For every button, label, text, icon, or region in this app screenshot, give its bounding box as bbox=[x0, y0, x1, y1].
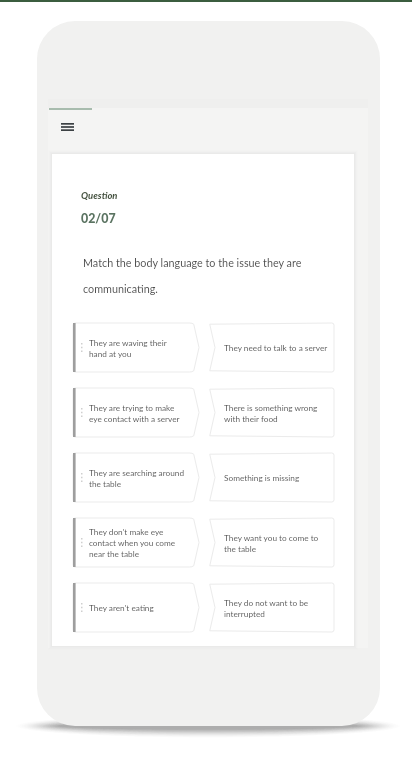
button[interactable]: They do not want to be interrupted bbox=[208, 583, 334, 632]
button[interactable]: They aren't eating bbox=[73, 583, 199, 632]
button[interactable]: They are trying to make eye contact with… bbox=[73, 388, 199, 437]
button[interactable]: They need to talk to a server bbox=[208, 323, 334, 372]
staticText: They are waving their hand at you bbox=[89, 338, 185, 358]
button[interactable]: Something is missing bbox=[208, 453, 334, 502]
button[interactable]: They are searching around the table bbox=[73, 453, 199, 502]
staticText: They are searching around the table bbox=[89, 468, 185, 488]
staticText: They want you to come to the table bbox=[224, 533, 328, 553]
button[interactable]: They are waving their hand at you bbox=[73, 323, 199, 372]
button[interactable]: They want you to come to the table bbox=[208, 518, 334, 567]
button[interactable]: They don't make eye contact when you com… bbox=[73, 518, 199, 567]
staticText: They do not want to be interrupted bbox=[224, 598, 328, 618]
button[interactable]: Open navigation menu bbox=[54, 116, 80, 138]
staticText: Question bbox=[81, 190, 118, 201]
staticText: There is something wrong with their food bbox=[224, 403, 328, 423]
button[interactable]: There is something wrong with their food bbox=[208, 388, 334, 437]
staticText: Something is missing bbox=[224, 473, 300, 483]
staticText: They need to talk to a server bbox=[224, 343, 328, 353]
staticText: Match the body language to the issue the… bbox=[83, 256, 323, 295]
staticText: They aren't eating bbox=[89, 603, 154, 613]
staticText: 02/07 bbox=[81, 211, 116, 226]
staticText: They are trying to make eye contact with… bbox=[89, 403, 185, 423]
staticText: They don't make eye contact when you com… bbox=[89, 527, 185, 558]
